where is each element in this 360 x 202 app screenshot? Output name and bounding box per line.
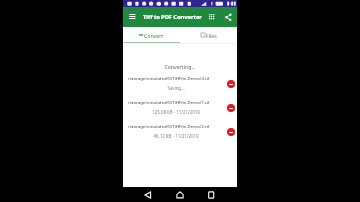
staticText: Converting... bbox=[123, 63, 237, 70]
button[interactable]: Home bbox=[161, 187, 199, 202]
staticText: Saving... bbox=[128, 85, 224, 91]
button[interactable]: Recents bbox=[199, 187, 237, 202]
button[interactable]: /storage/emulated/0/TiffFile-Demo/1.tif bbox=[123, 97, 237, 121]
staticText: Convert bbox=[144, 32, 164, 39]
button[interactable]: Remove bbox=[224, 125, 237, 138]
button[interactable]: Convert bbox=[123, 27, 180, 43]
button[interactable]: Share bbox=[224, 7, 237, 27]
staticText: 46.12 KB - 11/21/2019 bbox=[128, 133, 224, 139]
staticText: /storage/emulated/0/TiffFile-Demo/2.tif bbox=[128, 123, 210, 129]
button[interactable]: Remove bbox=[224, 77, 237, 90]
staticText: 125.08 KB - 11/21/2019 bbox=[128, 109, 224, 115]
button[interactable]: Remove bbox=[224, 101, 237, 114]
staticText: Files bbox=[206, 32, 217, 39]
button[interactable]: Menu bbox=[123, 7, 142, 27]
button[interactable]: /storage/emulated/0/TiffFile-Demo/2.tif bbox=[123, 121, 237, 145]
button[interactable]: Files bbox=[180, 27, 237, 43]
button[interactable]: /storage/emulated/0/TiffFile-Demo/3.tif bbox=[123, 73, 237, 97]
staticText: Tiff to PDF Converter bbox=[143, 13, 202, 21]
button[interactable]: Grid view bbox=[212, 7, 224, 27]
button[interactable]: Back bbox=[123, 187, 161, 202]
staticText: /storage/emulated/0/TiffFile-Demo/3.tif bbox=[128, 75, 210, 81]
staticText: /storage/emulated/0/TiffFile-Demo/1.tif bbox=[128, 99, 210, 105]
